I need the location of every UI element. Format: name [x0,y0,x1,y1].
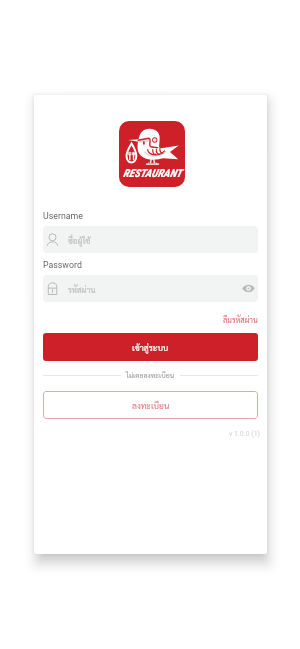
staticText: ลงทะเบียน [132,400,170,411]
staticText: Username [43,211,83,221]
staticText: ไม่เคยลงทะเบียน [126,371,175,380]
button[interactable]: เข้าสู่ระบบ [43,333,258,361]
staticText: ชื่อผู้ใช้ [68,235,91,245]
button[interactable]: ลงทะเบียน [43,391,258,419]
button[interactable]: Show password [240,280,256,296]
button[interactable]: รหัสผ่าน [43,275,258,302]
staticText: v 1.0.0 (1) [34,430,260,438]
staticText: Password [43,260,82,270]
button[interactable]: ชื่อผู้ใช้ [43,226,258,253]
staticText: RESTAURANT [123,167,182,180]
staticText: เข้าสู่ระบบ [132,342,169,353]
button[interactable]: ลืมรหัสผ่าน [223,315,267,325]
staticText: รหัสผ่าน [68,284,96,294]
